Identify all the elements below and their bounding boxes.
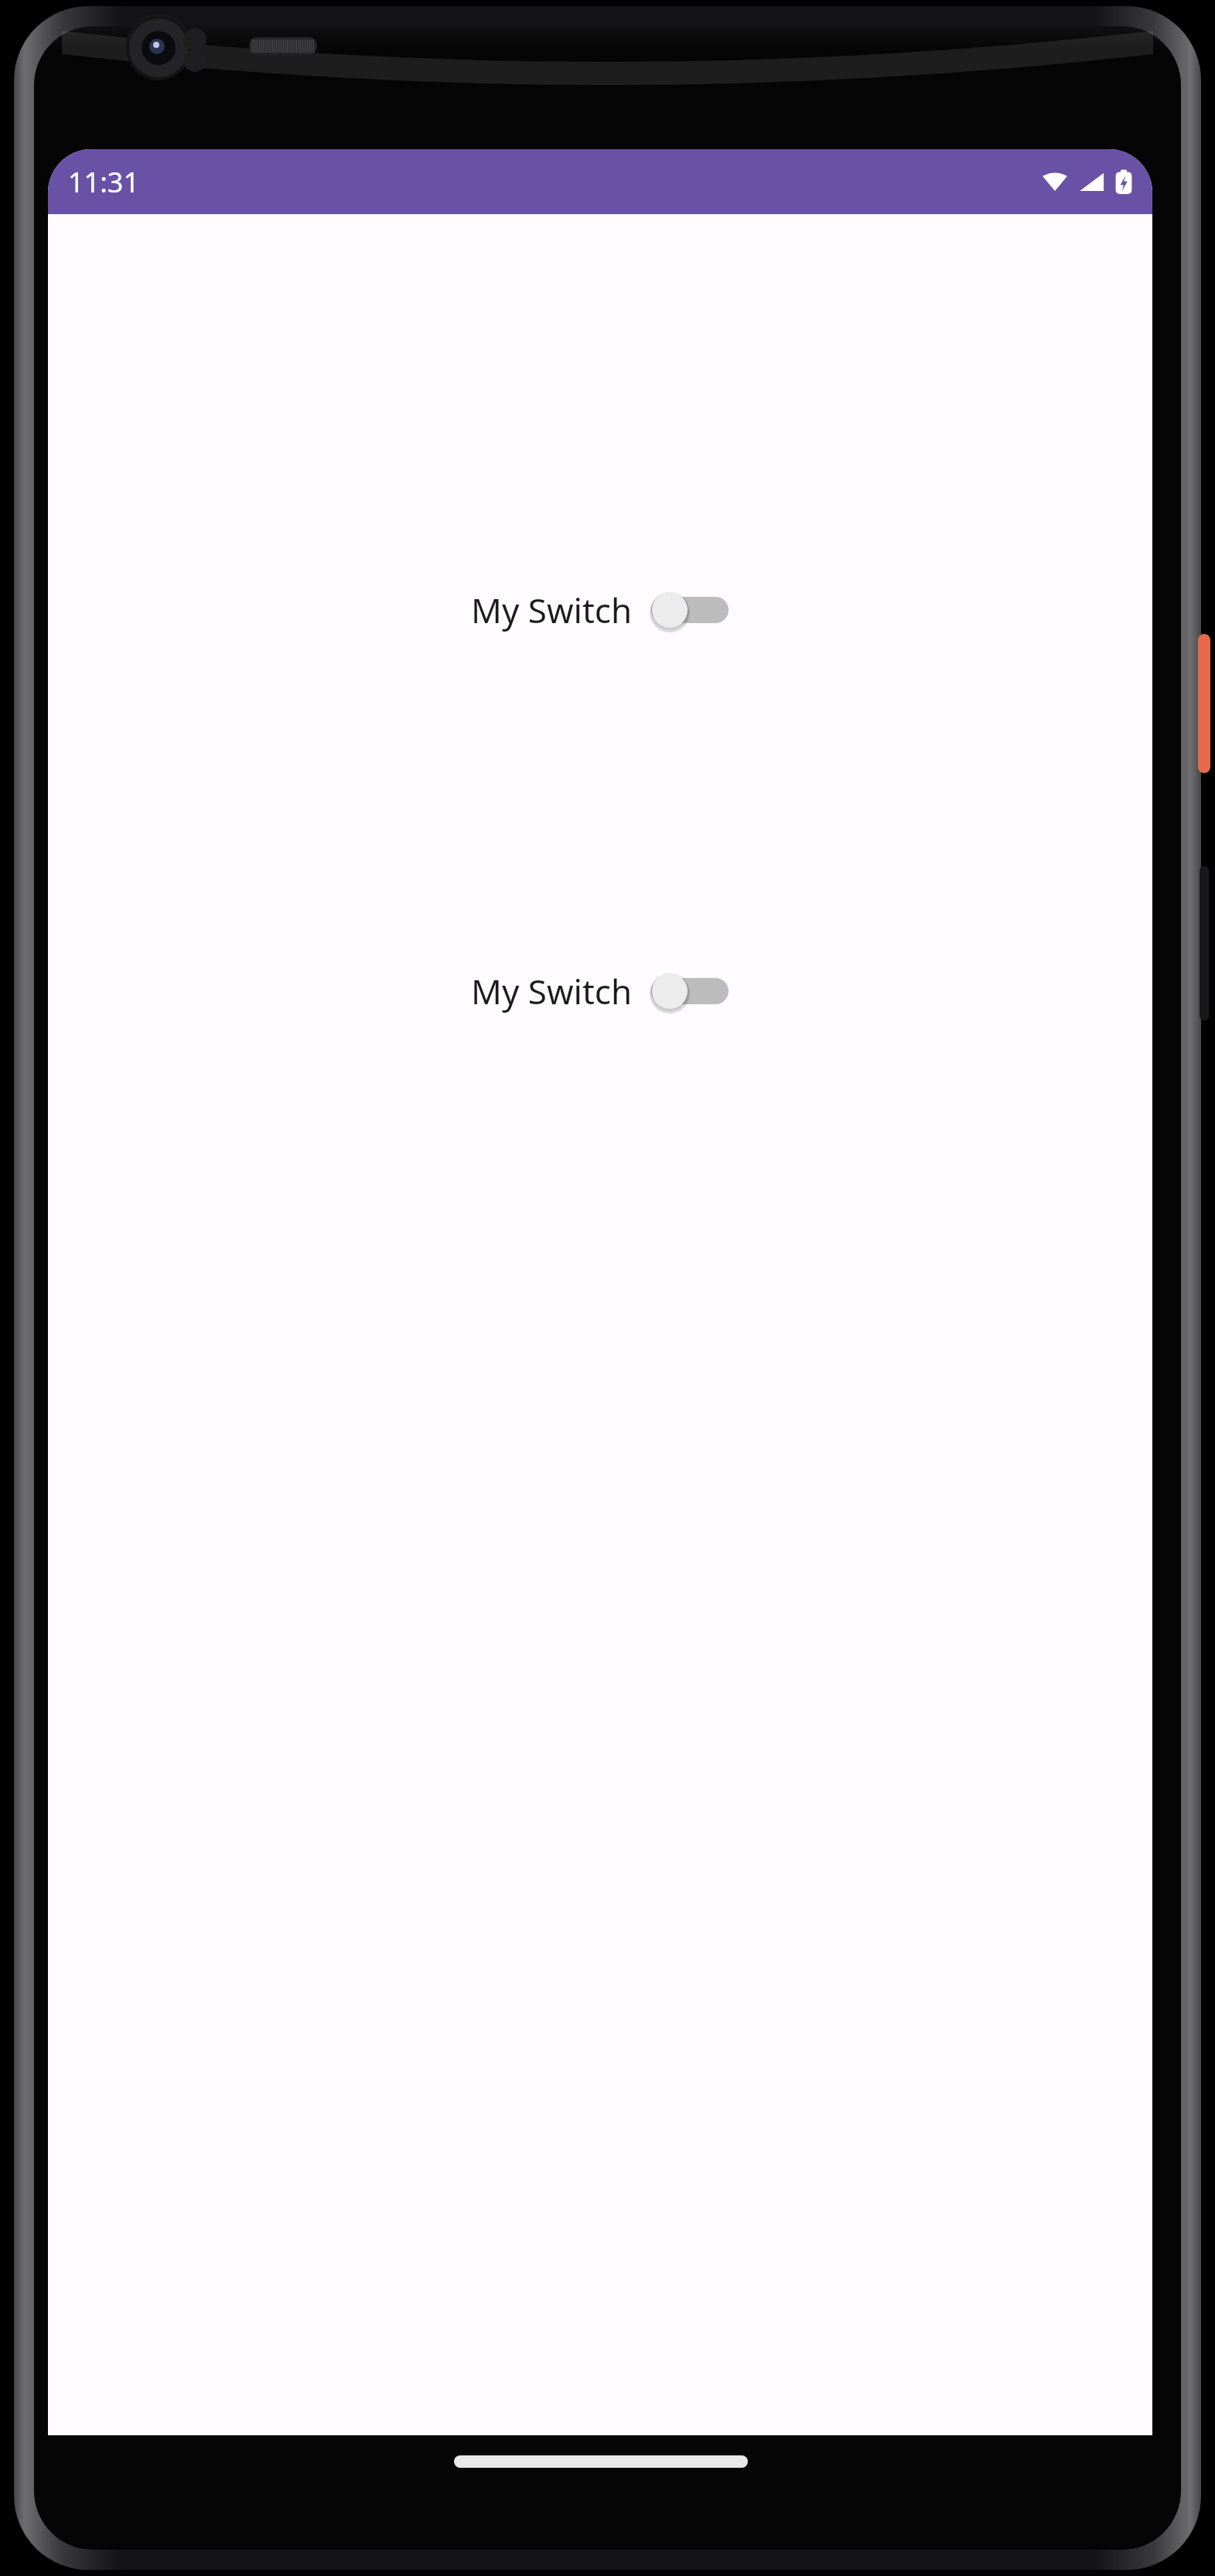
button[interactable]: My Switch — [468, 963, 733, 1019]
staticText: My Switch — [471, 587, 633, 633]
staticText: 11:31 — [68, 163, 140, 201]
button[interactable]: My Switch toggle — [650, 588, 730, 632]
button[interactable]: My Switch toggle — [650, 969, 730, 1013]
staticText: My Switch — [471, 968, 633, 1014]
button[interactable]: My Switch — [468, 582, 733, 638]
